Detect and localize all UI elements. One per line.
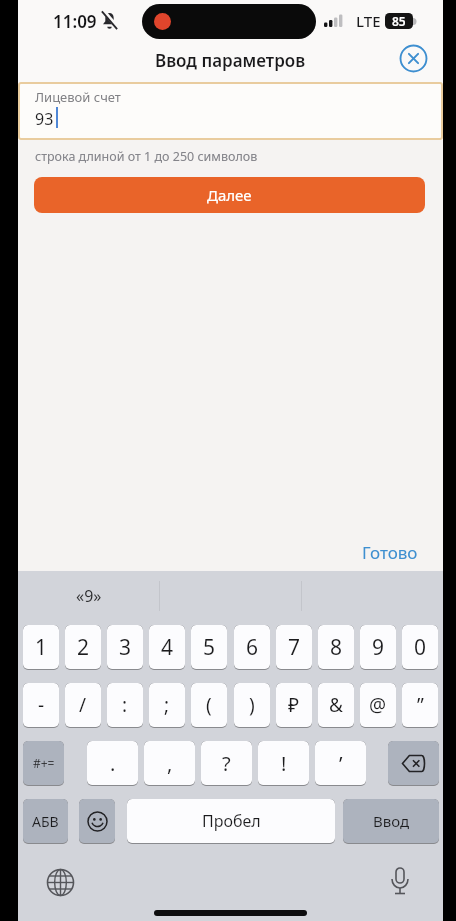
- staticText: ₽: [288, 692, 300, 718]
- staticText: Лицевой счет: [35, 88, 121, 106]
- staticText: ): [249, 692, 255, 718]
- staticText: Пробел: [202, 810, 261, 832]
- staticText: ”: [417, 692, 424, 718]
- button[interactable]: [388, 741, 439, 786]
- button[interactable]: ’: [315, 741, 366, 786]
- staticText: 2: [77, 633, 90, 662]
- button[interactable]: «9»: [18, 571, 160, 621]
- button[interactable]: 0: [402, 625, 438, 670]
- staticText: :: [122, 692, 128, 718]
- button[interactable]: 5: [191, 625, 227, 670]
- staticText: АБВ: [32, 812, 59, 831]
- button[interactable]: Далее: [34, 177, 425, 213]
- button[interactable]: /: [65, 683, 101, 728]
- button[interactable]: ₽: [276, 683, 312, 728]
- button[interactable]: Пробел: [127, 799, 335, 844]
- button[interactable]: ”: [402, 683, 438, 728]
- button[interactable]: АБВ: [23, 799, 68, 844]
- staticText: &: [329, 692, 343, 718]
- button[interactable]: 1: [23, 625, 59, 670]
- staticText: Ввод параметров: [155, 49, 306, 72]
- button[interactable]: ?: [201, 741, 252, 786]
- staticText: 9: [372, 633, 385, 662]
- button[interactable]: Ввод: [343, 799, 439, 844]
- button[interactable]: ;: [149, 683, 185, 728]
- button[interactable]: [79, 799, 115, 844]
- button[interactable]: @: [360, 683, 396, 728]
- button[interactable]: 7: [276, 625, 312, 670]
- staticText: Ввод: [373, 811, 410, 831]
- staticText: #+=: [33, 755, 55, 771]
- staticText: 7: [288, 633, 301, 662]
- staticText: «9»: [76, 585, 102, 607]
- button[interactable]: 6: [234, 625, 270, 670]
- staticText: @: [369, 692, 387, 718]
- button[interactable]: ,: [144, 741, 195, 786]
- button[interactable]: [399, 44, 428, 73]
- staticText: 5: [203, 633, 216, 662]
- staticText: 0: [414, 633, 427, 662]
- button[interactable]: 2: [65, 625, 101, 670]
- button[interactable]: ): [234, 683, 270, 728]
- button[interactable]: 4: [149, 625, 185, 670]
- staticText: Далее: [207, 185, 252, 205]
- button[interactable]: [386, 867, 414, 901]
- button[interactable]: :: [107, 683, 143, 728]
- staticText: -: [38, 692, 45, 718]
- staticText: 8: [330, 633, 343, 662]
- button[interactable]: -: [23, 683, 59, 728]
- staticText: LTE: [356, 11, 381, 31]
- staticText: ’: [339, 750, 343, 777]
- button[interactable]: 3: [107, 625, 143, 670]
- staticText: ,: [167, 750, 173, 777]
- staticText: 1: [35, 633, 48, 662]
- button[interactable]: [46, 868, 75, 897]
- button[interactable]: Лицевой счет: [18, 82, 443, 140]
- staticText: 6: [246, 633, 259, 662]
- button[interactable]: 8: [318, 625, 354, 670]
- staticText: строка длиной от 1 до 250 символов: [35, 148, 258, 165]
- staticText: 3: [119, 633, 132, 662]
- button[interactable]: Готово: [338, 537, 418, 567]
- button[interactable]: #+=: [23, 741, 64, 786]
- staticText: 85: [392, 13, 406, 29]
- button[interactable]: .: [87, 741, 138, 786]
- staticText: (: [206, 692, 212, 718]
- staticText: 11:09: [53, 10, 97, 33]
- staticText: /: [79, 692, 87, 718]
- staticText: !: [281, 750, 287, 777]
- staticText: 4: [161, 633, 174, 662]
- button[interactable]: &: [318, 683, 354, 728]
- button[interactable]: (: [191, 683, 227, 728]
- staticText: 93: [35, 108, 54, 130]
- staticText: .: [110, 750, 116, 777]
- staticText: Готово: [362, 541, 418, 564]
- button[interactable]: !: [258, 741, 309, 786]
- button[interactable]: 9: [360, 625, 396, 670]
- staticText: ;: [164, 692, 170, 718]
- staticText: ?: [222, 750, 231, 777]
